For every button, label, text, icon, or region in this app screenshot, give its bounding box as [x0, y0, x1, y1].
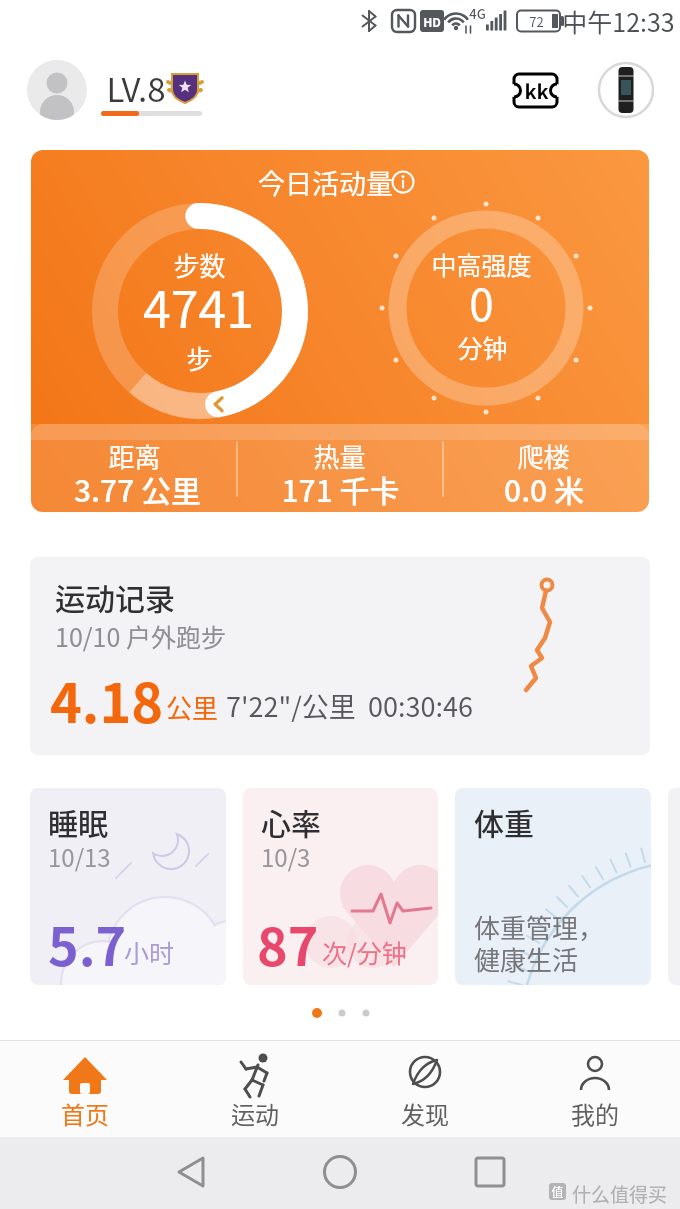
- staticText: 次/分钟: [322, 934, 407, 970]
- staticText: 心率: [261, 800, 321, 843]
- staticText: 4.18: [50, 660, 164, 738]
- staticText: 步数: [173, 246, 226, 284]
- staticText: 爬楼: [517, 437, 570, 475]
- staticText: 运动记录: [55, 575, 175, 618]
- staticText: 步: [186, 339, 213, 377]
- staticText: kk: [524, 76, 549, 105]
- staticText: 3.77 公里: [74, 467, 201, 510]
- staticText: 小时: [124, 934, 175, 970]
- staticText: 距离: [108, 437, 161, 475]
- staticText: 我的: [571, 1096, 619, 1131]
- staticText: 87: [257, 906, 319, 981]
- staticText: 睡眠: [48, 800, 108, 843]
- staticText: 热量: [313, 437, 366, 475]
- staticText: 5.7: [48, 906, 127, 981]
- staticText: 健康生活: [474, 940, 579, 978]
- staticText: 什么值得买: [572, 1180, 668, 1208]
- staticText: 10/10 户外跑步: [55, 618, 226, 654]
- staticText: 首页: [61, 1096, 109, 1131]
- staticText: 发现: [401, 1096, 449, 1131]
- staticText: 体重管理，: [474, 908, 605, 946]
- staticText: 0.0 米: [504, 467, 584, 510]
- staticText: LV.8: [106, 64, 166, 112]
- staticText: 公里: [166, 688, 219, 726]
- staticText: 值: [551, 1183, 564, 1200]
- staticText: HD: [423, 13, 441, 30]
- staticText: 10/13: [48, 839, 111, 874]
- staticText: 0: [469, 270, 494, 334]
- staticText: 171 千卡: [281, 467, 400, 510]
- staticText: 中高强度: [431, 246, 532, 282]
- staticText: 运动: [231, 1096, 279, 1131]
- staticText: 4741: [143, 270, 254, 342]
- staticText: 今日活动量: [258, 163, 393, 202]
- staticText: 体重: [474, 800, 534, 843]
- staticText: 中午12:33: [562, 3, 675, 39]
- staticText: 分钟: [457, 329, 508, 365]
- staticText: 7'22"/公里: [226, 686, 356, 725]
- staticText: 00:30:46: [368, 686, 473, 725]
- staticText: 4G: [469, 4, 486, 23]
- staticText: 10/3: [261, 839, 311, 874]
- staticText: 72: [529, 12, 544, 31]
